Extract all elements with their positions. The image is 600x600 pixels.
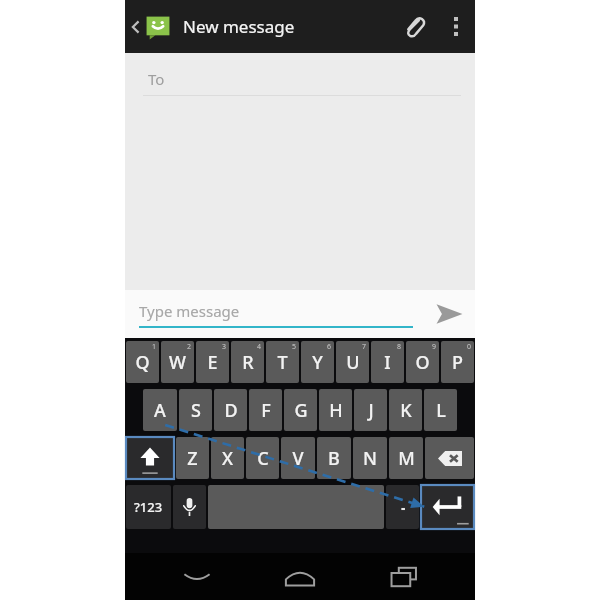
staticText: F [261,398,271,423]
staticText: X [222,446,233,471]
staticText: I [384,350,391,375]
button[interactable]: Back [165,553,229,600]
staticText: K [400,398,412,423]
staticText: R [242,350,254,375]
button[interactable]: Home [268,553,332,600]
staticText: 1 [152,342,157,352]
button[interactable]: M [389,437,423,479]
button[interactable]: Navigate up [125,0,175,53]
staticText: D [224,398,238,423]
button[interactable]: R [231,341,264,383]
staticText: H [329,398,343,423]
staticText: E [207,350,218,375]
button[interactable]: J [354,389,387,431]
staticText: C [257,446,269,471]
button[interactable]: U [336,341,369,383]
button[interactable]: W [161,341,194,383]
staticText: S [191,398,201,423]
staticText: L [436,398,446,423]
staticText: U [346,350,360,375]
button[interactable]: C [246,437,279,479]
button[interactable]: N [353,437,387,479]
button[interactable]: Send [423,290,475,338]
button[interactable]: V [281,437,315,479]
button[interactable]: D [214,389,247,431]
staticText: N [363,446,377,471]
staticText: 2 [187,342,192,352]
button[interactable]: Shift [126,437,174,479]
staticText: V [292,446,304,471]
staticText: M [398,446,415,471]
button[interactable]: More options [437,0,475,53]
button[interactable]: Voice input [173,485,206,529]
button[interactable]: P [441,341,474,383]
staticText: 6 [327,342,332,352]
staticText: Q [135,350,150,375]
button[interactable]: G [284,389,317,431]
button[interactable]: F [249,389,282,431]
staticText: W [169,350,186,375]
button[interactable]: To [125,63,475,95]
button[interactable]: Z [176,437,209,479]
button[interactable]: Enter [421,485,474,529]
button[interactable]: L [424,389,457,431]
button[interactable]: O [406,341,439,383]
button[interactable]: S [179,389,212,431]
staticText: ?123 [134,498,163,516]
button[interactable]: I [371,341,404,383]
staticText: A [154,398,166,423]
staticText: New message [183,15,295,38]
staticText: 3 [222,342,227,352]
staticText: 9 [432,342,437,352]
button[interactable]: Q [126,341,159,383]
staticText: B [328,446,340,471]
staticText: Type message [139,301,240,321]
staticText: 0 [467,342,472,352]
button[interactable]: X [211,437,244,479]
staticText: J [368,398,374,423]
staticText: G [294,398,308,423]
staticText: P [452,350,463,375]
staticText: T [277,350,288,375]
button[interactable]: E [196,341,229,383]
staticText: Y [312,350,323,375]
button[interactable]: Y [301,341,334,383]
staticText: 5 [292,342,297,352]
staticText: 7 [362,342,367,352]
button[interactable]: Attach [391,0,437,53]
button[interactable]: T [266,341,299,383]
button[interactable] [386,485,419,529]
button[interactable]: Backspace [425,437,474,479]
staticText: Z [187,446,198,471]
staticText: To [148,69,165,89]
button[interactable]: K [389,389,422,431]
button[interactable]: ?123 [126,485,171,529]
staticText: 8 [397,342,402,352]
button[interactable]: B [317,437,351,479]
button[interactable]: Recent apps [372,553,436,600]
staticText: 4 [257,342,262,352]
staticText: O [415,350,430,375]
button[interactable]: Type message [125,301,423,328]
button[interactable]: A [143,389,177,431]
button[interactable]: H [319,389,352,431]
button[interactable]: Space [208,485,384,529]
